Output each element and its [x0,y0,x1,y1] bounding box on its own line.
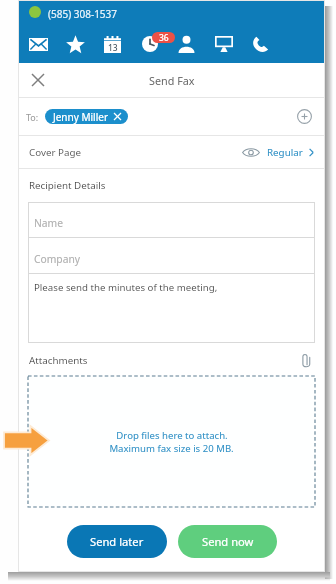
staticText: Maximum fax size is 20 MB. [109,442,234,455]
button[interactable]: Drop files here to attach. [28,376,315,507]
staticText: To: [26,111,39,123]
other: Pointer [3,425,50,456]
button[interactable]: Recent calls [131,25,168,63]
staticText: Drop files here to attach. [116,429,228,442]
button[interactable]: Jenny Miller [45,109,128,124]
staticText: 36 [159,32,169,43]
button[interactable]: Cover Page [19,136,324,168]
staticText: Send Fax [149,73,195,88]
button[interactable]: Close [26,63,50,97]
staticText: Recipient Details [29,179,106,192]
staticText: Jenny Miller [53,110,109,124]
button[interactable]: Send now [178,525,277,558]
button[interactable]: Mail [20,25,57,63]
button[interactable]: Call [242,25,279,63]
staticText: Send later [90,534,144,549]
staticText: 13 [108,42,118,54]
button[interactable]: Favorites [57,25,94,63]
staticText: Cover Page [29,146,81,159]
button[interactable]: Contacts [168,25,205,63]
staticText: Send now [202,534,254,549]
button[interactable]: Desktop [205,25,242,63]
staticText: Regular [267,146,303,159]
staticText: Attachments [29,354,88,367]
staticText: Please send the minutes of the meeting, [34,281,218,294]
button[interactable]: Send later [67,525,167,558]
button[interactable]: Add recipient [294,106,315,127]
staticText: Name [34,216,64,230]
staticText: (585) 308-1537 [48,7,118,21]
button[interactable]: Attach file [296,350,316,370]
staticText: Company [34,252,81,266]
button[interactable]: Calendar [94,25,131,63]
